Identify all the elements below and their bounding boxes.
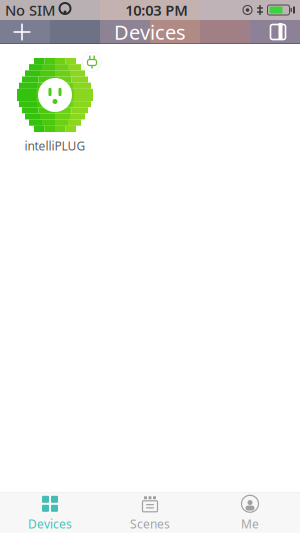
staticText: Scenes	[130, 516, 170, 532]
button[interactable]: Edit	[256, 20, 300, 44]
button[interactable]: intelliPLUG	[12, 56, 98, 154]
staticText: Me	[241, 516, 259, 532]
button[interactable]: Me	[200, 490, 300, 533]
staticText: No SIM	[5, 0, 55, 20]
staticText: 10:03 PM	[125, 0, 188, 20]
button[interactable]: Devices	[0, 490, 100, 533]
button[interactable]: Add device	[0, 20, 44, 44]
staticText: Devices	[28, 516, 72, 532]
staticText: intelliPLUG	[24, 138, 85, 154]
staticText: Devices	[114, 19, 186, 45]
button[interactable]: Scenes	[100, 490, 200, 533]
